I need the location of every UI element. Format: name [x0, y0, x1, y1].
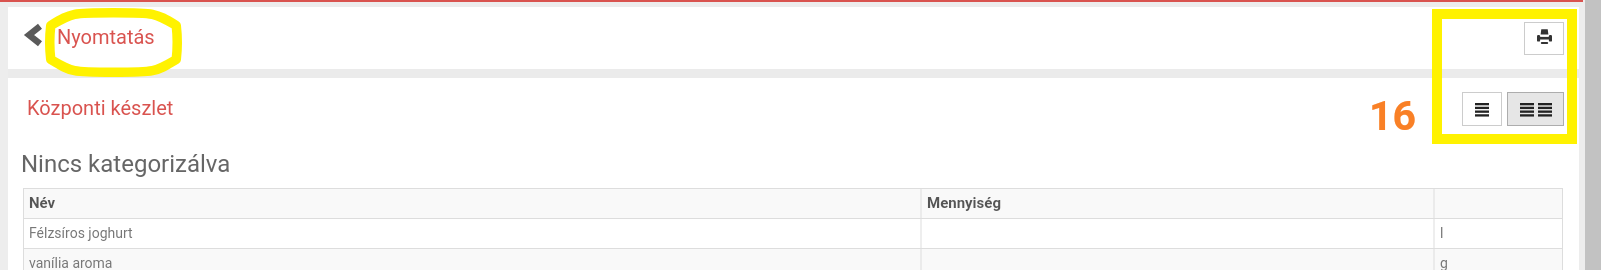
staticText: 16 — [1369, 92, 1417, 140]
staticText: Név — [29, 194, 56, 212]
button[interactable]: Grid view — [1507, 92, 1564, 126]
staticText: Nincs kategorizálva — [21, 150, 231, 178]
staticText: Központi készlet — [27, 96, 174, 119]
button[interactable]: Back to Nyomtatás — [20, 14, 170, 56]
staticText: Mennyiség — [927, 194, 1001, 212]
button[interactable]: List view — [1462, 92, 1502, 126]
staticText: Félzsíros joghurt — [29, 225, 133, 241]
button[interactable]: Print — [1524, 22, 1564, 55]
staticText: g — [1440, 255, 1448, 270]
staticText: Nyomtatás — [57, 25, 155, 48]
staticText: l — [1440, 225, 1444, 241]
staticText: vanília aroma — [29, 255, 113, 270]
